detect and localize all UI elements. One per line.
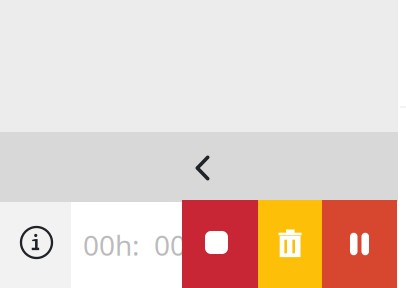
button[interactable]: Pause [322,200,397,288]
button[interactable]: Delete [258,200,322,288]
staticText: 00h: 00 [83,226,186,264]
button[interactable]: Information [0,202,71,288]
button[interactable]: Stop [182,200,258,288]
button[interactable]: Back [175,143,223,191]
